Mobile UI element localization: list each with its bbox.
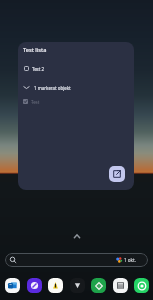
- staticText: Test lista: [23, 46, 47, 54]
- button[interactable]: WhatsApp: [134, 278, 149, 293]
- button[interactable]: Search: [5, 253, 148, 267]
- button[interactable]: App: [48, 278, 63, 293]
- button[interactable]: Test lista: [18, 42, 134, 190]
- button[interactable]: Open note: [109, 166, 125, 182]
- other: Assistant: [116, 257, 122, 263]
- button[interactable]: App: [70, 278, 85, 293]
- staticText: Test 2: [32, 66, 44, 72]
- button[interactable]: Browser: [27, 278, 42, 293]
- staticText: 1 okt.: [124, 257, 136, 263]
- button[interactable]: App: [91, 278, 106, 293]
- button[interactable]: Outlook: [5, 278, 20, 293]
- button[interactable]: App: [113, 278, 128, 293]
- staticText: Test: [31, 99, 40, 105]
- staticText: 1 markerat objekt: [34, 85, 71, 91]
- other: Search: [9, 256, 17, 264]
